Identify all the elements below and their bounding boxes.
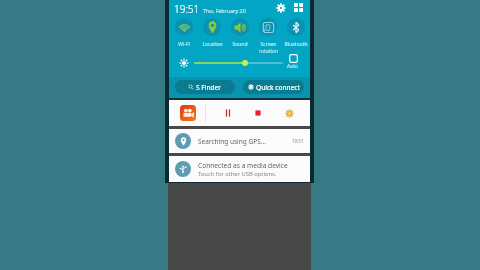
button[interactable]: Expand quick settings <box>292 1 305 14</box>
button[interactable]: Pause <box>219 104 237 122</box>
button[interactable]: Searching using GPS... <box>169 129 310 153</box>
staticText: Touch for other USB options. <box>198 170 277 178</box>
button[interactable]: Screen rotation <box>254 17 282 54</box>
button[interactable]: Connected as a media device <box>169 156 310 182</box>
button[interactable]: Quick connect <box>243 80 304 94</box>
staticText: 19:51 <box>174 2 200 16</box>
staticText: Connected as a media device <box>198 161 288 170</box>
staticText: Auto <box>287 63 299 70</box>
button[interactable]: Stop <box>249 104 267 122</box>
staticText: Sound <box>232 41 248 48</box>
staticText: Screen rotation <box>259 41 278 54</box>
button[interactable]: Sound <box>226 17 254 54</box>
staticText: Bluetooth <box>284 41 308 48</box>
button[interactable]: Bluetooth <box>282 17 310 54</box>
button[interactable]: S Finder <box>175 80 235 94</box>
staticText: Wi-Fi <box>178 41 190 48</box>
staticText: Quick connect <box>256 83 300 92</box>
button[interactable]: Recorder app <box>180 105 196 121</box>
staticText: Searching using GPS... <box>198 137 266 146</box>
staticText: Thu, February 20 <box>203 7 246 14</box>
button[interactable]: Recorder settings <box>280 104 298 122</box>
staticText: S Finder <box>196 83 222 92</box>
staticText: 19:51 <box>292 138 304 144</box>
staticText: Location <box>202 41 223 48</box>
button[interactable]: Settings <box>274 1 287 14</box>
button[interactable]: Wi-Fi <box>169 17 198 54</box>
button[interactable]: Auto brightness <box>287 54 299 70</box>
button[interactable]: Location <box>198 17 226 54</box>
